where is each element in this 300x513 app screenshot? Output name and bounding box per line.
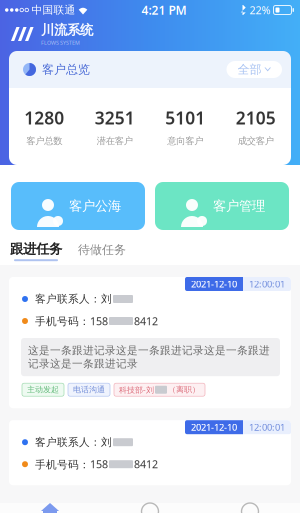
staticText: 客户联系人：刘 xyxy=(35,436,112,449)
button[interactable]: Home xyxy=(0,503,100,513)
staticText: 1280 xyxy=(24,106,64,129)
staticText: （离职） xyxy=(168,385,200,395)
staticText: FLOWS SYSTEM xyxy=(41,39,80,46)
staticText: 意向客户 xyxy=(167,135,203,147)
staticText: 科技部-刘 xyxy=(119,384,154,395)
staticText: 客户总数 xyxy=(26,135,62,147)
staticText: 2021-12-10 xyxy=(191,278,237,290)
staticText: 电话沟通 xyxy=(73,385,105,395)
button[interactable]: 客户管理 xyxy=(155,182,289,230)
staticText: 客户管理 xyxy=(213,198,265,214)
button[interactable]: 客户公海 xyxy=(11,182,145,230)
staticText: 手机号码：158 xyxy=(35,457,108,471)
staticText: 川流系统 xyxy=(41,22,93,38)
staticText: 成交客户 xyxy=(238,135,274,147)
staticText: 手机号码：158 xyxy=(35,314,108,328)
staticText: 5101 xyxy=(165,106,205,129)
staticText: 2105 xyxy=(236,106,276,129)
staticText: 8412 xyxy=(134,314,158,328)
staticText: 主动发起 xyxy=(27,385,59,395)
staticText: 22% xyxy=(246,3,273,17)
button[interactable]: 全部 xyxy=(226,61,282,78)
staticText: 12:00:01 xyxy=(249,278,285,290)
staticText: 8412 xyxy=(134,457,158,471)
staticText: 中国联通 xyxy=(28,3,78,16)
button[interactable]: Profile xyxy=(200,503,300,513)
staticText: 待做任务 xyxy=(78,242,126,257)
staticText: 全部 xyxy=(237,62,261,77)
staticText: 客户总览 xyxy=(42,62,90,77)
staticText: 2021-12-10 xyxy=(191,421,237,433)
staticText: 客户联系人：刘 xyxy=(35,292,112,305)
staticText: 客户公海 xyxy=(69,198,121,214)
button[interactable]: 待做任务 xyxy=(78,242,126,261)
staticText: 潜在客户 xyxy=(97,135,133,147)
staticText: 跟进任务 xyxy=(10,241,62,257)
staticText: 这是一条跟进记录这是一条跟进记录这是一条跟进记录这是一条跟进记录 xyxy=(28,344,270,370)
button[interactable]: Messages xyxy=(100,503,200,513)
staticText: 3251 xyxy=(95,106,135,129)
staticText: 4:21 PM xyxy=(141,2,186,18)
button[interactable]: 跟进任务 xyxy=(10,241,62,261)
staticText: 12:00:01 xyxy=(249,421,285,433)
